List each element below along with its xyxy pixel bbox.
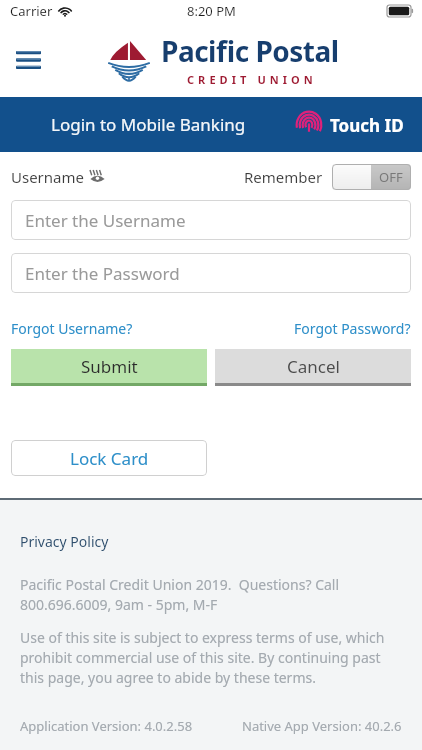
staticText: Carrier: [10, 2, 53, 20]
staticText: C R E D I T U N I O N: [187, 72, 314, 87]
staticText: Enter the Username: [25, 209, 186, 232]
staticText: Username: [11, 167, 84, 187]
button[interactable]: Forgot Password?: [294, 319, 411, 338]
button[interactable]: Privacy Policy: [20, 532, 109, 551]
staticText: Enter the Password: [25, 262, 180, 285]
button[interactable]: Remember username off: [332, 164, 411, 190]
staticText: Cancel: [287, 355, 340, 378]
button[interactable]: Touch ID: [296, 112, 404, 138]
staticText: Remember: [244, 167, 323, 187]
staticText: Native App Version: 40.2.6: [242, 717, 402, 735]
button[interactable]: Menu: [10, 43, 46, 77]
button[interactable]: Cancel: [215, 349, 411, 386]
button[interactable]: Lock Card: [11, 440, 207, 476]
button[interactable]: Submit: [11, 349, 207, 386]
staticText: Lock Card: [70, 447, 149, 470]
staticText: Forgot Username?: [11, 319, 133, 338]
staticText: OFF: [379, 168, 403, 186]
staticText: Pacific Postal: [161, 32, 339, 70]
staticText: Pacific Postal Credit Union 2019. Questi…: [20, 575, 402, 614]
button[interactable]: Enter the Username: [11, 200, 411, 240]
staticText: Application Version: 4.0.2.58: [20, 717, 193, 735]
staticText: Forgot Password?: [294, 319, 411, 338]
staticText: Login to Mobile Banking: [51, 113, 246, 136]
button[interactable]: Login to Mobile Banking: [0, 97, 296, 152]
staticText: 8:20 PM: [187, 2, 236, 20]
staticText: Touch ID: [330, 114, 404, 137]
button[interactable]: Enter the Password: [11, 253, 411, 293]
staticText: Privacy Policy: [20, 532, 109, 551]
button[interactable]: Forgot Username?: [11, 319, 133, 338]
staticText: Use of this site is subject to express t…: [20, 628, 402, 687]
staticText: Submit: [81, 355, 138, 378]
